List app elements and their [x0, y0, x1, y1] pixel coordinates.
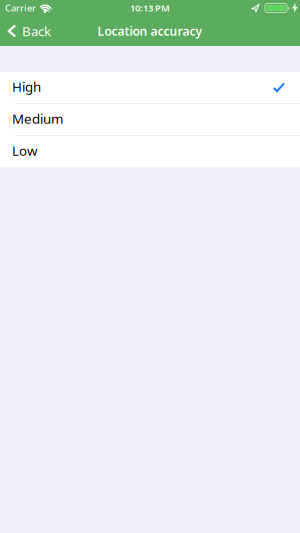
staticText: Low	[12, 142, 37, 159]
staticText: Carrier	[5, 2, 36, 14]
button[interactable]: Back	[0, 22, 51, 40]
staticText: Medium	[12, 110, 63, 127]
staticText: High	[12, 78, 41, 95]
button[interactable]: Low	[0, 136, 300, 167]
staticText: Back	[22, 22, 51, 40]
staticText: Location accuracy	[97, 23, 202, 39]
staticText: 10:13 PM	[130, 2, 170, 14]
button[interactable]: High	[0, 72, 300, 103]
button[interactable]: Medium	[0, 104, 300, 135]
